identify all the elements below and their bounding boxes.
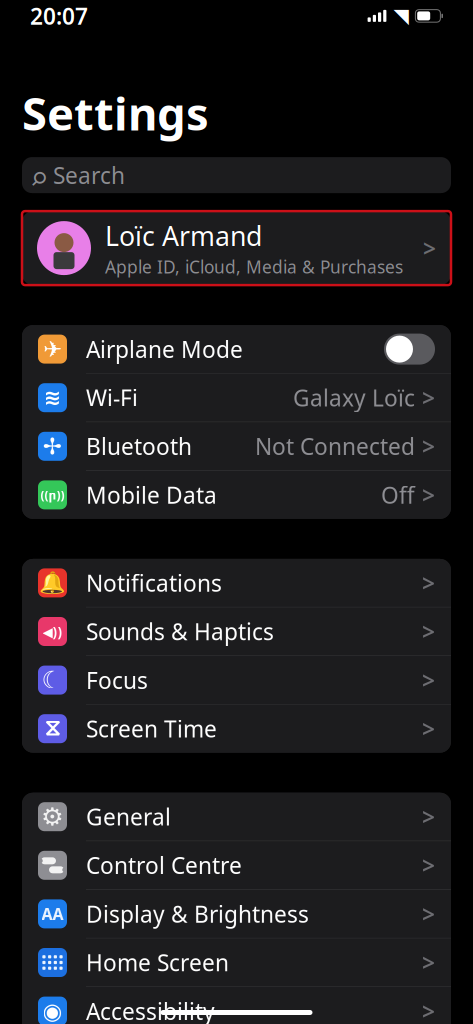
button[interactable]: Control Centre [22,841,451,890]
staticText: > [423,233,436,263]
button[interactable]: ◀)) [22,607,451,656]
staticText: Accessibility [86,996,215,1024]
staticText: > [422,850,435,880]
staticText: 20:07 [30,1,88,31]
staticText: Home Screen [86,947,229,977]
button[interactable]: ((ր)) [22,471,451,519]
staticText: > [422,947,435,977]
staticText: ⚙ [41,802,64,831]
button[interactable]: ✈ [22,325,451,374]
button[interactable]: Home Screen [22,938,451,987]
staticText: Apple ID, iCloud, Media & Purchases [105,255,403,278]
button[interactable]: ⚙ [22,793,451,841]
staticText: Wi-Fi [86,383,138,413]
staticText: Focus [86,665,148,695]
staticText: > [422,616,435,646]
staticText: Not Connected [255,431,415,461]
staticText: ≋ [43,386,61,410]
staticText: > [422,480,435,510]
staticText: ((ր)) [40,487,64,503]
staticText: General [86,802,171,832]
staticText: ☾ [41,666,63,694]
button[interactable]: ⧖ [22,705,451,753]
button[interactable]: ☾ [22,656,451,705]
staticText: Search [53,160,125,190]
staticText: ◉ [42,998,62,1024]
staticText: Galaxy Loïc [293,383,415,413]
button[interactable]: AA [22,890,451,938]
staticText: ⌕ [31,150,47,200]
button[interactable]: ✢ [22,422,451,471]
staticText: > [422,714,435,744]
staticText: Screen Time [86,714,217,744]
button[interactable]: 🔔 [22,559,451,607]
staticText: Notifications [86,568,222,598]
staticText: Control Centre [86,850,242,880]
staticText: ✈ [43,336,62,362]
button[interactable]: ◉ [22,987,451,1024]
staticText: Bluetooth [86,431,192,461]
staticText: AA [41,903,63,924]
staticText: ⧖ [44,718,60,740]
staticText: ◀)) [42,623,62,640]
button[interactable]: ⌕ [22,157,451,193]
staticText: > [422,431,435,461]
staticText: Sounds & Haptics [86,616,274,646]
button[interactable]: Loïc Armand [22,211,451,285]
staticText: ◥ [393,5,408,27]
staticText: Display & Brightness [86,899,309,929]
staticText: Airplane Mode [86,334,243,364]
staticText: Settings [22,83,209,143]
staticText: > [422,996,435,1024]
staticText: Off [381,480,415,510]
staticText: > [422,802,435,832]
staticText: > [422,899,435,929]
staticText: ✢ [43,433,62,459]
staticText: Loïc Armand [105,218,262,253]
staticText: > [422,665,435,695]
staticText: > [422,383,435,413]
staticText: Mobile Data [86,480,217,510]
staticText: > [422,568,435,598]
staticText: 🔔 [39,571,66,595]
button[interactable]: ≋ [22,374,451,422]
